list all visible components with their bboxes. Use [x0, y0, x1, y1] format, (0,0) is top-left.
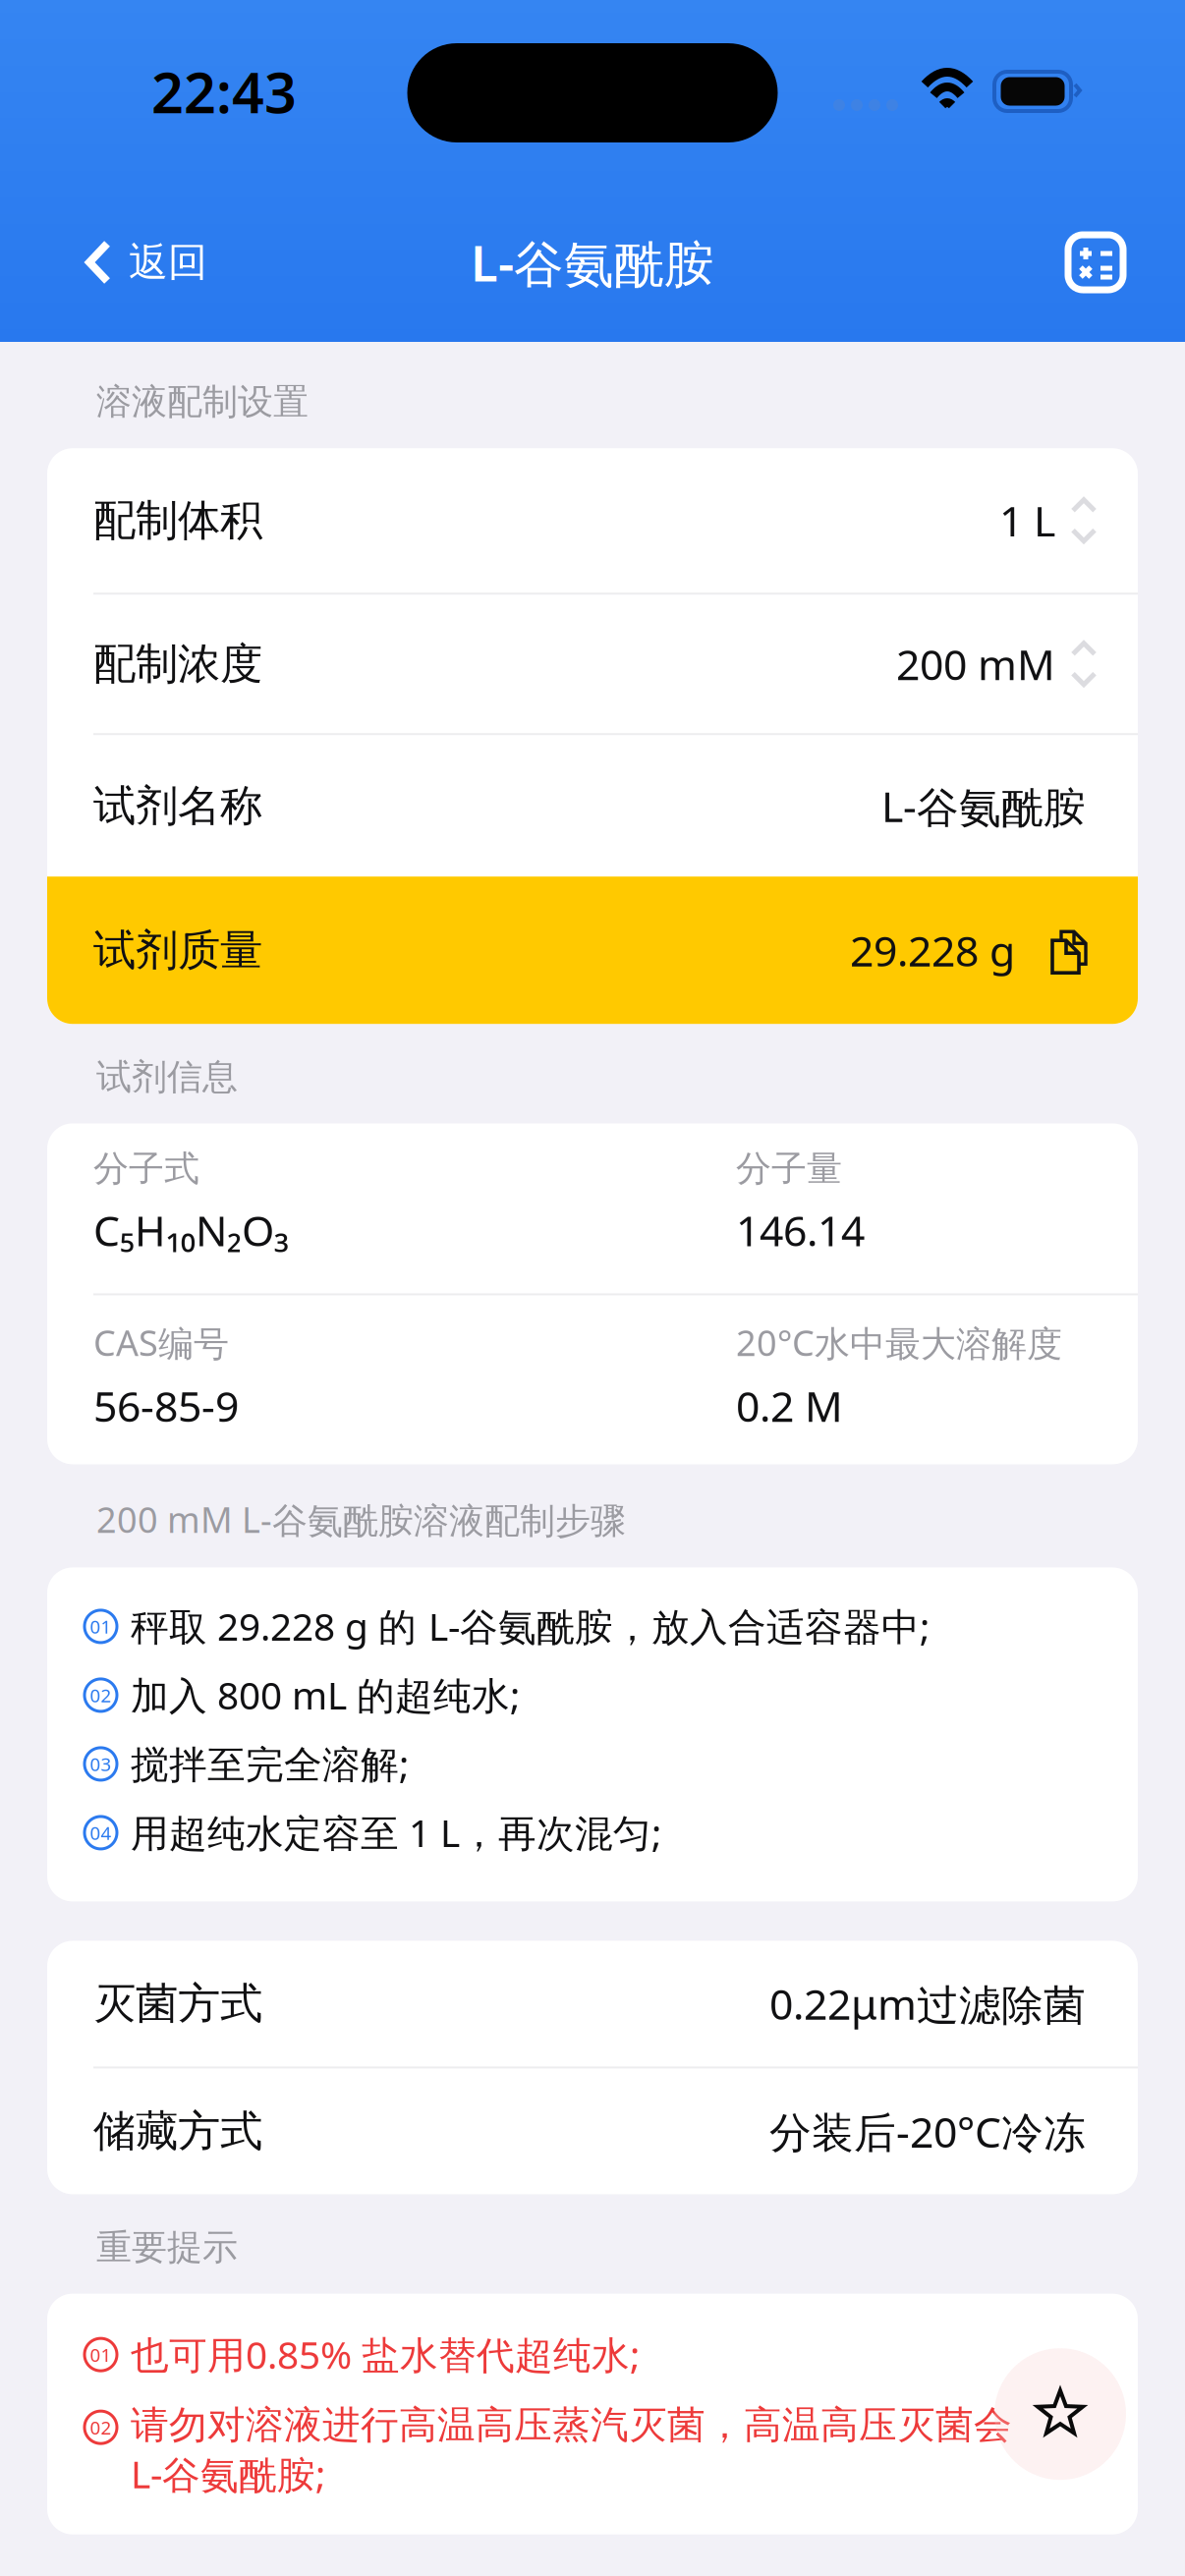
button[interactable]: 试剂质量	[47, 877, 1138, 1024]
staticText: 200 mM	[896, 636, 1055, 692]
staticText: 0.22μm过滤除菌	[769, 1976, 1086, 2032]
staticText: 灭菌方式	[93, 1977, 262, 2030]
staticText: 试剂质量	[93, 923, 262, 977]
staticText: 02	[90, 2415, 112, 2440]
staticText: 用超纯水定容至 1 L，再次混匀;	[131, 1807, 661, 1858]
staticText: 01	[90, 1614, 112, 1639]
button[interactable]: 配制浓度	[47, 595, 1138, 733]
button[interactable]: 配制体积	[47, 448, 1138, 593]
button[interactable]: 灭菌方式	[47, 1941, 1138, 2066]
staticText: 储藏方式	[93, 2105, 262, 2158]
button[interactable]: 试剂名称	[47, 735, 1138, 877]
button[interactable]: 收藏	[994, 2348, 1138, 2480]
staticText: C₅H₁₀N₂O₃	[93, 1202, 289, 1258]
staticText: 配制浓度	[93, 637, 262, 691]
staticText: 29.228 g	[850, 922, 1015, 978]
staticText: 02	[90, 1683, 112, 1707]
staticText: 试剂名称	[93, 779, 262, 833]
staticText: 146.14	[736, 1202, 865, 1258]
staticText: 分装后-20°C冷冻	[769, 2104, 1086, 2159]
staticText: 04	[90, 1820, 112, 1845]
staticText: 请勿对溶液进行高温高压蒸汽灭菌，高温高压灭菌会 L-谷氨酰胺;	[131, 2402, 1012, 2499]
staticText: 加入 800 mL 的超纯水;	[131, 1670, 520, 1720]
staticText: 返回	[129, 238, 207, 286]
staticText: 03	[90, 1752, 112, 1776]
staticText: 56-85-9	[93, 1378, 239, 1434]
staticText: 200 mM L-谷氨酰胺溶液配制步骤	[96, 1496, 626, 1543]
button[interactable]: 计算器	[1038, 203, 1185, 321]
staticText: 溶液配制设置	[96, 380, 309, 424]
staticText: 重要提示	[96, 2226, 238, 2269]
staticText: 20°C水中最大溶解度	[736, 1319, 1062, 1366]
staticText: 0.2 M	[736, 1378, 843, 1434]
staticText: 秤取 29.228 g 的 L-谷氨酰胺，放入合适容器中;	[131, 1601, 930, 1651]
staticText: L-谷氨酰胺	[881, 778, 1086, 834]
staticText: 试剂信息	[96, 1055, 238, 1099]
staticText: 也可用0.85% 盐水替代超纯水;	[131, 2329, 640, 2379]
staticText: 01	[90, 2342, 112, 2367]
staticText: 22:43	[151, 54, 297, 129]
staticText: CAS编号	[93, 1319, 229, 1366]
button[interactable]: 储藏方式	[47, 2068, 1138, 2194]
staticText: 配制体积	[93, 494, 262, 547]
staticText: 搅拌至完全溶解;	[131, 1738, 409, 1789]
staticText: L-谷氨酰胺	[471, 229, 714, 295]
staticText: 分子式	[93, 1147, 199, 1190]
button[interactable]: 返回	[0, 203, 231, 321]
staticText: 1 L	[999, 493, 1055, 548]
staticText: 分子量	[736, 1147, 842, 1190]
